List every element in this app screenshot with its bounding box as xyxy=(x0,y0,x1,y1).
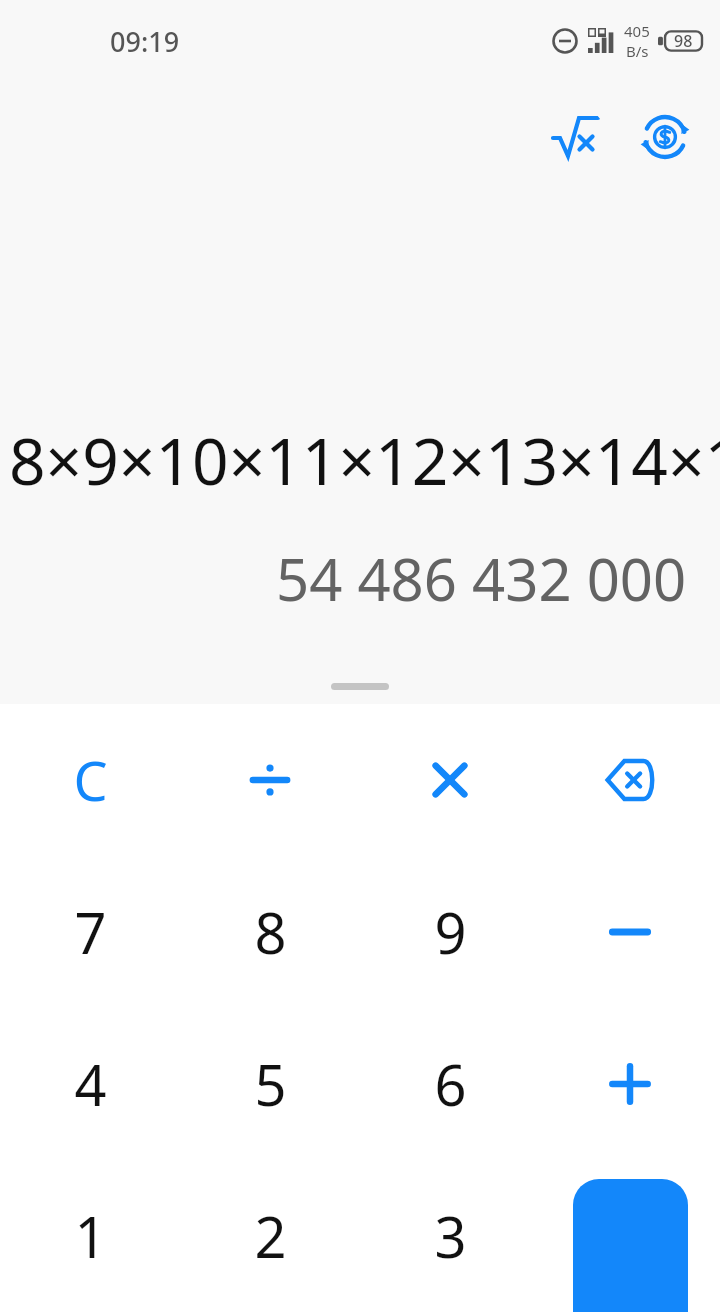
button[interactable]: Plus xyxy=(540,1008,720,1160)
staticText: 4 xyxy=(74,1046,107,1122)
button[interactable]: 1 xyxy=(0,1160,180,1312)
button[interactable]: Backspace xyxy=(540,704,720,856)
button[interactable]: Equals xyxy=(573,1179,688,1312)
button[interactable]: 4 xyxy=(0,1008,180,1160)
staticText: 9 xyxy=(434,894,467,970)
staticText: 8×9×10×11×12×13×14×15 xyxy=(9,417,720,504)
button[interactable]: 6 xyxy=(360,1008,540,1160)
button[interactable]: 3 xyxy=(360,1160,540,1312)
staticText: 98 xyxy=(674,30,693,52)
staticText: 5 xyxy=(254,1046,287,1122)
button[interactable]: 7 xyxy=(0,856,180,1008)
button[interactable]: Multiply xyxy=(360,704,540,856)
button[interactable]: C xyxy=(0,704,180,856)
button[interactable]: Expand keypad xyxy=(331,683,389,690)
staticText: 54 486 432 000 xyxy=(276,539,687,618)
button[interactable]: Currency converter xyxy=(634,106,696,168)
button[interactable]: 8 xyxy=(180,856,360,1008)
button[interactable]: Minus xyxy=(540,856,720,1008)
staticText: 1 xyxy=(74,1198,107,1274)
button[interactable]: 2 xyxy=(180,1160,360,1312)
staticText: C xyxy=(73,743,108,817)
staticText: 09:19 xyxy=(110,23,180,60)
button[interactable]: 5 xyxy=(180,1008,360,1160)
staticText: 405 xyxy=(624,21,650,41)
staticText: 7 xyxy=(74,894,107,970)
button[interactable]: Scientific calculator xyxy=(544,106,606,168)
staticText: 8 xyxy=(254,894,287,970)
staticText: 2 xyxy=(254,1198,287,1274)
staticText: 3 xyxy=(434,1198,467,1274)
button[interactable]: Divide xyxy=(180,704,360,856)
button[interactable]: 9 xyxy=(360,856,540,1008)
staticText: B/s xyxy=(626,41,649,61)
staticText: 6 xyxy=(434,1046,467,1122)
